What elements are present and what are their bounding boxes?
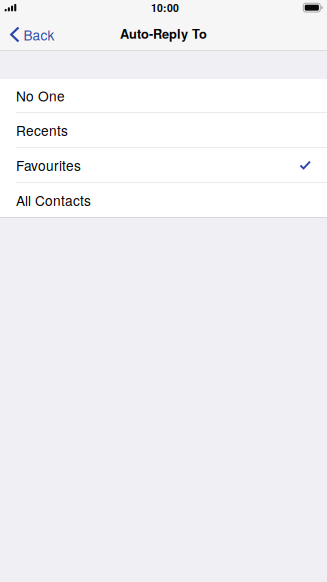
button[interactable]: Back [0, 18, 65, 50]
staticText: Back [24, 25, 55, 44]
staticText: 10:00 [151, 0, 179, 15]
staticText: Auto-Reply To [120, 24, 207, 43]
staticText: Recents [16, 120, 68, 140]
button[interactable]: Recents [0, 113, 327, 147]
staticText: No One [16, 86, 65, 105]
staticText: All Contacts [16, 190, 91, 210]
button[interactable]: All Contacts [0, 183, 327, 217]
staticText: Favourites [16, 155, 81, 175]
button[interactable]: No One [0, 79, 327, 112]
button[interactable]: Favourites [0, 148, 327, 182]
